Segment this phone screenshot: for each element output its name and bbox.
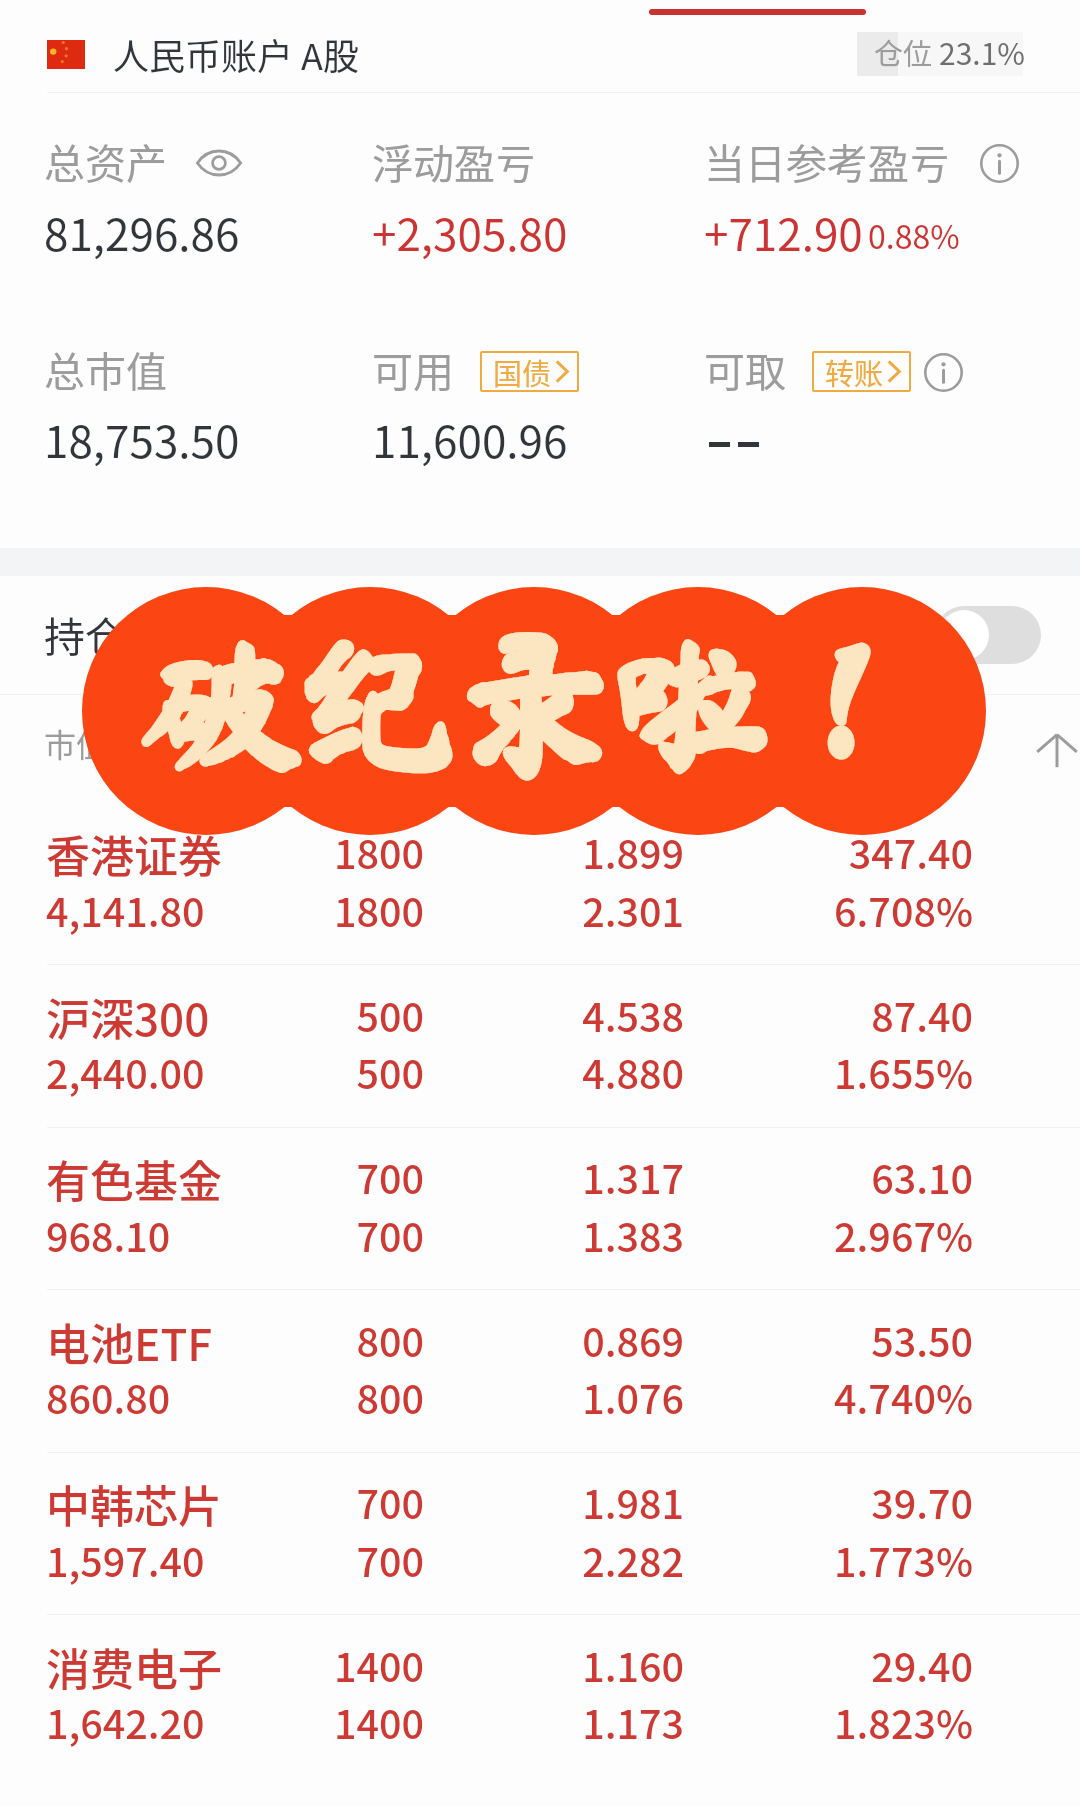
staticText: 市值: [44, 720, 109, 766]
button[interactable]: [0, 1115, 1080, 1277]
staticText: 0.869: [384, 1311, 684, 1368]
staticText: 4.880: [384, 1043, 684, 1100]
button[interactable]: Info about daily P/L: [980, 144, 1019, 183]
staticText: 人民币账户 A股: [113, 28, 359, 80]
staticText: 1.899: [384, 823, 684, 880]
staticText: 中韩芯片: [46, 1472, 222, 1536]
button[interactable]: Toggle holdings display: [935, 606, 1041, 664]
staticText: 1.317: [384, 1148, 684, 1205]
button[interactable]: [0, 953, 1080, 1115]
staticText: 破纪录啦！: [143, 624, 929, 781]
staticText: 39.70: [673, 1473, 973, 1530]
staticText: 81,296.86: [44, 200, 240, 264]
staticText: 当日参考盈亏: [704, 131, 950, 190]
button[interactable]: 国债: [480, 351, 579, 392]
staticText: 香港证券: [46, 822, 222, 886]
button[interactable]: Sort by market value: [1034, 724, 1080, 772]
staticText: 29.40: [673, 1636, 973, 1693]
staticText: 18,753.50: [44, 407, 240, 471]
staticText: 转账: [825, 351, 884, 392]
button[interactable]: [0, 790, 1080, 952]
staticText: 6.708%: [673, 881, 973, 938]
staticText: 2.967%: [673, 1206, 973, 1263]
staticText: 总资产: [44, 131, 167, 190]
staticText: 1.981: [384, 1473, 684, 1530]
staticText: 1.823%: [673, 1693, 973, 1750]
staticText: 700: [124, 1531, 424, 1588]
staticText: 4.538: [384, 986, 684, 1043]
staticText: 浮动盈亏: [372, 131, 536, 190]
staticText: 2.301: [384, 881, 684, 938]
staticText: 可取: [704, 339, 786, 398]
staticText: 1.655%: [673, 1043, 973, 1100]
staticText: 1.076: [384, 1368, 684, 1425]
staticText: 沪深300: [46, 985, 210, 1049]
staticText: 1.173: [384, 1693, 684, 1750]
staticText: 有色基金: [46, 1147, 222, 1211]
staticText: 消费电子: [46, 1635, 222, 1699]
staticText: 破纪录啦！: [143, 624, 929, 781]
staticText: 700: [124, 1148, 424, 1205]
staticText: 1,597.40: [46, 1531, 205, 1588]
staticText: 1800: [124, 823, 424, 880]
staticText: 800: [124, 1368, 424, 1425]
staticText: 2,440.00: [46, 1043, 205, 1100]
staticText: 1800: [124, 881, 424, 938]
staticText: 347.40: [673, 823, 973, 880]
staticText: 968.10: [46, 1206, 171, 1263]
button[interactable]: [0, 1603, 1080, 1765]
staticText: 4,141.80: [46, 881, 205, 938]
staticText: 500: [124, 986, 424, 1043]
staticText: 1,642.20: [46, 1693, 205, 1750]
staticText: 63.10: [673, 1148, 973, 1205]
staticText: 800: [124, 1311, 424, 1368]
staticText: 1.160: [384, 1636, 684, 1693]
staticText: 700: [124, 1473, 424, 1530]
staticText: 500: [124, 1043, 424, 1100]
staticText: 1400: [124, 1636, 424, 1693]
staticText: 1.383: [384, 1206, 684, 1263]
staticText: 1.773%: [673, 1531, 973, 1588]
staticText: 可用: [372, 339, 454, 398]
button[interactable]: [0, 1440, 1080, 1602]
button[interactable]: Info about withdrawable: [924, 353, 963, 392]
button[interactable]: 转账: [812, 351, 911, 392]
staticText: 53.50: [673, 1311, 973, 1368]
staticText: 2.282: [384, 1531, 684, 1588]
staticText: 700: [124, 1206, 424, 1263]
staticText: 87.40: [673, 986, 973, 1043]
staticText: 11,600.96: [372, 407, 568, 471]
staticText: 国债: [493, 351, 552, 392]
staticText: +712.90: [704, 200, 863, 264]
staticText: 电池ETF: [46, 1310, 213, 1374]
staticText: 仓位: [874, 31, 933, 73]
staticText: 860.80: [46, 1368, 171, 1425]
staticText: 总市值: [44, 339, 167, 398]
staticText: 4.740%: [673, 1368, 973, 1425]
staticText: 持仓: [44, 604, 126, 663]
staticText: 0.88%: [868, 212, 960, 258]
staticText: +2,305.80: [372, 200, 568, 264]
button[interactable]: Hide amounts: [196, 147, 242, 179]
staticText: 1400: [124, 1693, 424, 1750]
staticText: 23.1%: [939, 30, 1025, 73]
button[interactable]: [0, 1278, 1080, 1440]
